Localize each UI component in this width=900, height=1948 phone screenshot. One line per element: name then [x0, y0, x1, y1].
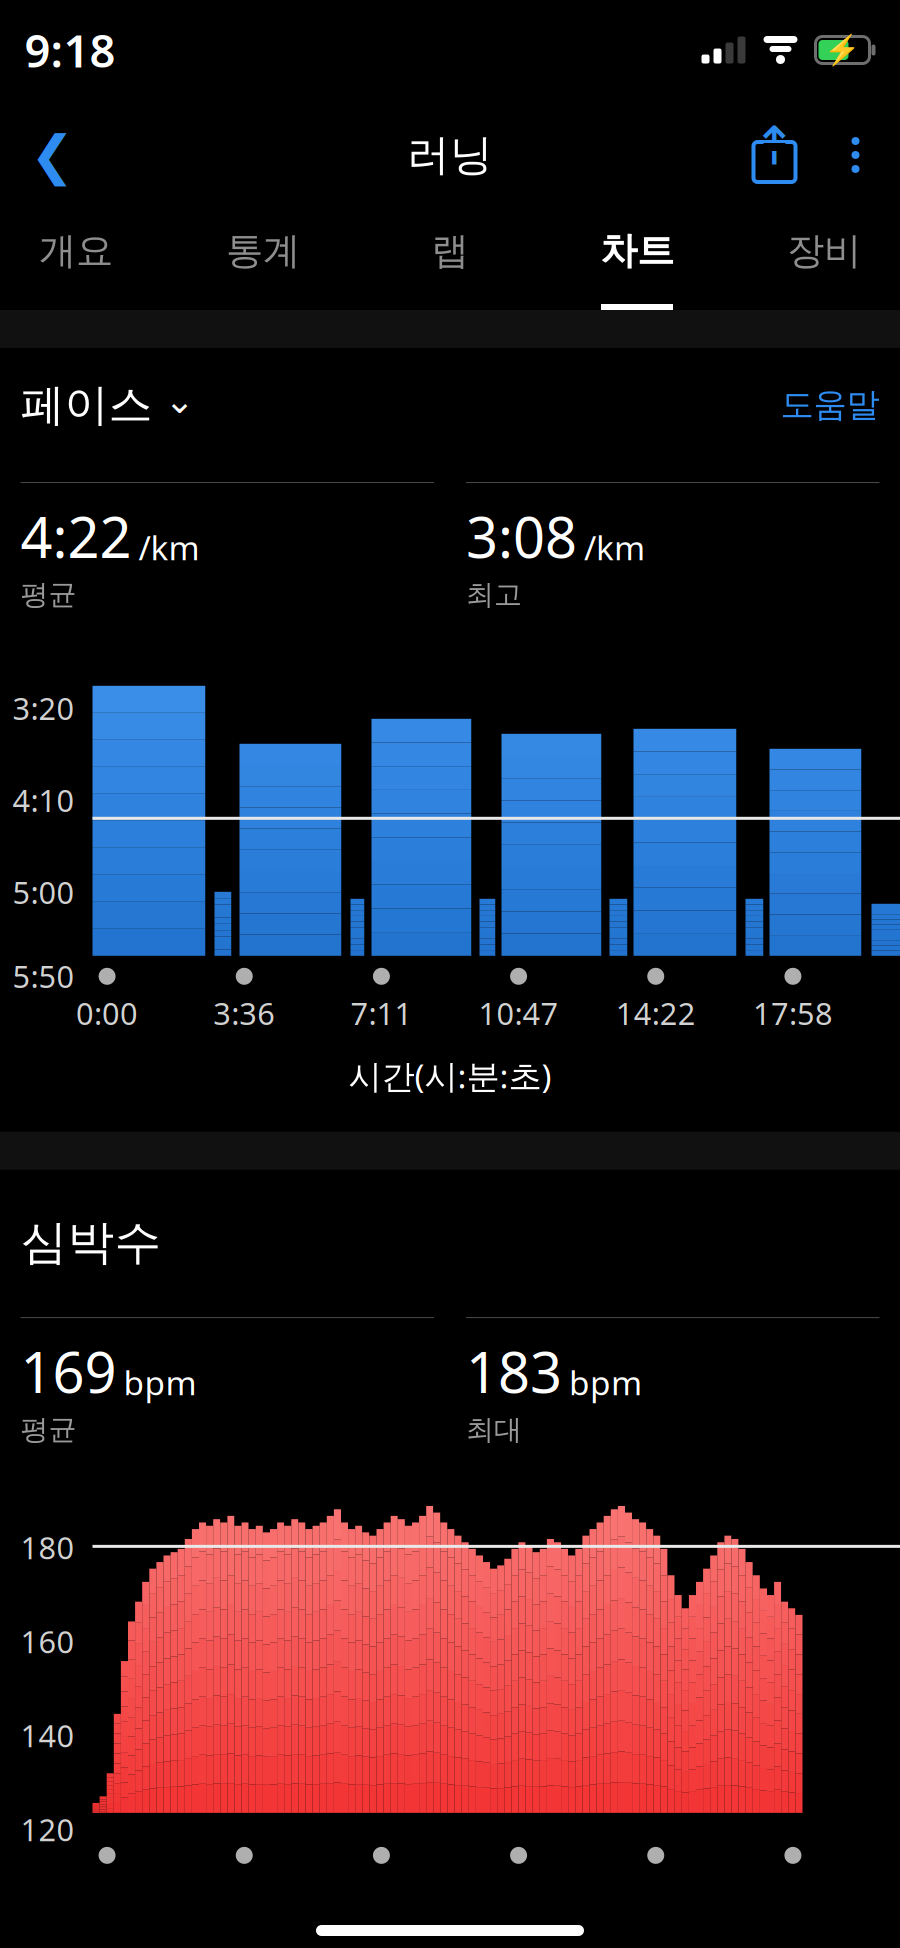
- button[interactable]: 랩: [356, 210, 543, 310]
- staticText: 도움말: [780, 385, 879, 425]
- button[interactable]: 페이스: [20, 378, 194, 432]
- staticText: 3:08: [466, 499, 577, 573]
- staticText: 120: [20, 1809, 74, 1850]
- staticText: 10:47: [479, 993, 559, 1033]
- staticText: 17:58: [753, 993, 833, 1033]
- staticText: 3:20: [12, 688, 74, 728]
- staticText: ↑: [752, 116, 797, 176]
- staticText: ⌄: [164, 380, 194, 421]
- staticText: 심박수: [20, 1214, 161, 1271]
- staticText: 시간(시:분:초): [348, 1053, 551, 1098]
- staticText: 0:00: [76, 993, 138, 1033]
- staticText: 14:22: [616, 993, 696, 1033]
- staticText: 차트: [600, 228, 674, 274]
- staticText: /km: [584, 525, 645, 569]
- staticText: 페이스: [20, 378, 152, 432]
- staticText: 5:50: [12, 956, 74, 996]
- staticText: 통계: [226, 228, 300, 274]
- staticText: 평균: [20, 577, 76, 612]
- staticText: ⚡: [824, 33, 861, 67]
- staticText: 랩: [431, 228, 468, 274]
- staticText: bpm: [569, 1360, 642, 1404]
- staticText: 장비: [787, 228, 861, 274]
- button[interactable]: 차트: [543, 210, 730, 310]
- staticText: 160: [20, 1621, 74, 1662]
- staticText: 4:22: [20, 499, 131, 573]
- staticText: 7:11: [350, 993, 412, 1033]
- button[interactable]: Share: [731, 109, 817, 201]
- staticText: 183: [466, 1334, 562, 1408]
- staticText: 최대: [466, 1412, 522, 1447]
- button[interactable]: 개요: [0, 210, 169, 310]
- staticText: ❮: [30, 125, 75, 185]
- staticText: 3:36: [213, 993, 275, 1033]
- staticText: 개요: [39, 228, 113, 274]
- staticText: /km: [138, 525, 199, 569]
- staticText: bpm: [123, 1360, 196, 1404]
- staticText: 9:18: [24, 20, 115, 80]
- button[interactable]: More options: [817, 109, 893, 201]
- staticText: 140: [20, 1715, 74, 1756]
- staticText: 169: [20, 1334, 116, 1408]
- button[interactable]: 통계: [169, 210, 356, 310]
- staticText: 5:00: [12, 872, 74, 912]
- button[interactable]: Back: [6, 109, 98, 201]
- staticText: 4:10: [12, 780, 74, 820]
- staticText: 평균: [20, 1412, 76, 1447]
- staticText: 최고: [466, 577, 522, 612]
- staticText: 러닝: [407, 129, 493, 181]
- staticText: 180: [20, 1527, 74, 1568]
- button[interactable]: 도움말: [780, 385, 879, 425]
- button[interactable]: 장비: [730, 210, 900, 310]
